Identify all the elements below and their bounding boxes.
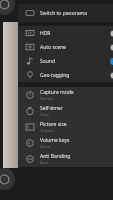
button[interactable]: Volume keys — [18, 135, 113, 151]
button[interactable]: Auto scene — [18, 40, 113, 54]
button[interactable]: Geo-tagging — [18, 68, 113, 82]
staticText: Normal — [40, 96, 53, 101]
staticText: Capture mode — [40, 89, 74, 96]
button[interactable]: Anti Banding — [18, 151, 113, 167]
button[interactable]: Self-timer — [18, 103, 113, 119]
button[interactable]: Sound — [18, 54, 113, 68]
button[interactable]: Switch to panorama — [18, 4, 113, 22]
staticText: Auto — [40, 160, 48, 165]
staticText: Switch to panorama — [40, 10, 87, 17]
staticText: HDR — [40, 30, 51, 37]
staticText: Self-timer — [40, 105, 63, 112]
staticText: Zoom — [40, 144, 50, 149]
button[interactable]: Picture size — [18, 119, 113, 135]
staticText: Auto scene — [40, 44, 66, 51]
button[interactable]: Capture mode — [18, 87, 113, 103]
staticText: Picture size — [40, 121, 67, 128]
staticText: Sound — [40, 58, 56, 65]
staticText: Close — [40, 112, 50, 117]
staticText: Anti Banding — [40, 153, 71, 160]
staticText: 16 point — [40, 128, 54, 133]
button[interactable]: Camera mode — [0, 0, 15, 15]
staticText: Geo-tagging — [40, 72, 70, 79]
button[interactable]: HDR — [18, 26, 113, 40]
staticText: Volume keys — [40, 137, 70, 144]
button[interactable]: Switch camera — [0, 168, 15, 190]
